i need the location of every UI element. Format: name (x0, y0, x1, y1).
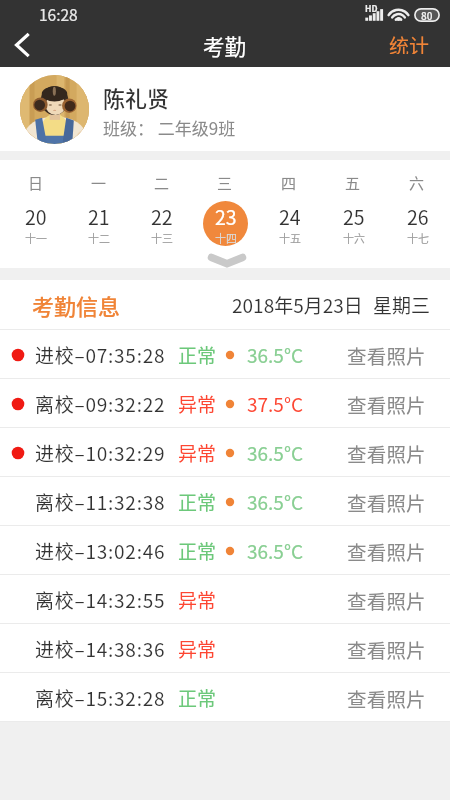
staticText: 36.5°C (247, 439, 304, 467)
staticText: 离校–15:32:28 (35, 684, 166, 712)
staticText: 十五 (279, 230, 301, 246)
staticText: 六 (409, 172, 425, 192)
staticText: 正常 (178, 537, 217, 565)
staticText: 考勤信息 (32, 289, 121, 321)
staticText: 16:28 (39, 3, 78, 25)
staticText: 十七 (407, 230, 429, 246)
staticText: 37.5°C (247, 390, 304, 418)
button[interactable]: 进校–07:35:28 (0, 330, 450, 379)
staticText: 十六 (343, 230, 365, 246)
button[interactable]: 统计 (368, 25, 450, 64)
button[interactable]: 21 (67, 200, 130, 246)
staticText: 十三 (151, 230, 173, 246)
staticText: 23 (215, 202, 237, 230)
button[interactable]: 离校–14:32:55 (0, 575, 450, 624)
staticText: 二 (154, 172, 170, 192)
button[interactable]: 20 (4, 200, 67, 246)
staticText: 五 (345, 172, 361, 192)
button[interactable]: 22 (130, 200, 193, 246)
staticText: 异常 (178, 390, 217, 418)
staticText: 查看照片 (347, 390, 426, 418)
staticText: 22 (151, 202, 173, 230)
staticText: 三 (217, 172, 233, 192)
staticText: 进校–14:38:36 (35, 635, 166, 663)
staticText: 查看照片 (347, 586, 426, 614)
staticText: 查看照片 (347, 341, 426, 369)
button[interactable]: 26 (385, 200, 449, 246)
button[interactable]: 进校–13:02:46 (0, 526, 450, 575)
staticText: 查看照片 (347, 537, 426, 565)
staticText: 四 (281, 172, 297, 192)
staticText: 查看照片 (347, 635, 426, 663)
staticText: 十四 (215, 230, 237, 246)
staticText: 2018年5月23日 (232, 291, 363, 319)
staticText: 陈礼贤 (103, 81, 170, 113)
staticText: 36.5°C (247, 341, 304, 369)
staticText: 异常 (178, 439, 217, 467)
button[interactable]: 24 (257, 200, 321, 246)
staticText: 十一 (25, 230, 47, 246)
staticText: 进校–13:02:46 (35, 537, 166, 565)
button[interactable]: 25 (321, 200, 385, 246)
staticText: 26 (407, 202, 429, 230)
button[interactable]: 离校–11:32:38 (0, 477, 450, 526)
staticText: 查看照片 (347, 488, 426, 516)
staticText: 考勤 (203, 30, 247, 61)
staticText: 离校–11:32:38 (35, 488, 166, 516)
staticText: 异常 (178, 586, 217, 614)
staticText: 36.5°C (247, 537, 304, 565)
staticText: 进校–10:32:29 (35, 439, 166, 467)
button[interactable]: 进校–14:38:36 (0, 624, 450, 673)
staticText: 80 (421, 8, 433, 22)
staticText: 20 (25, 202, 47, 230)
button[interactable]: Back (0, 28, 46, 67)
staticText: 36.5°C (247, 488, 304, 516)
staticText: 十二 (88, 230, 110, 246)
staticText: 离校–09:32:22 (35, 390, 166, 418)
staticText: 一 (91, 172, 107, 192)
button[interactable]: 陈礼贤 (0, 67, 450, 151)
button[interactable]: 离校–09:32:22 (0, 379, 450, 428)
staticText: 正常 (178, 341, 217, 369)
button[interactable]: 进校–10:32:29 (0, 428, 450, 477)
staticText: 查看照片 (347, 684, 426, 712)
staticText: 离校–14:32:55 (35, 586, 166, 614)
staticText: 24 (279, 202, 301, 230)
staticText: 异常 (178, 635, 217, 663)
staticText: 21 (88, 202, 110, 230)
staticText: 正常 (178, 684, 217, 712)
staticText: 班级： 二年级9班 (103, 115, 236, 140)
staticText: 统计 (389, 31, 429, 54)
staticText: 进校–07:35:28 (35, 341, 166, 369)
button[interactable]: 23 (193, 200, 257, 246)
button[interactable]: 离校–15:32:28 (0, 673, 450, 722)
staticText: HD (365, 2, 378, 14)
staticText: 星期三 (373, 291, 431, 319)
staticText: 日 (28, 172, 44, 192)
staticText: 25 (343, 202, 365, 230)
staticText: 查看照片 (347, 439, 426, 467)
staticText: 正常 (178, 488, 217, 516)
